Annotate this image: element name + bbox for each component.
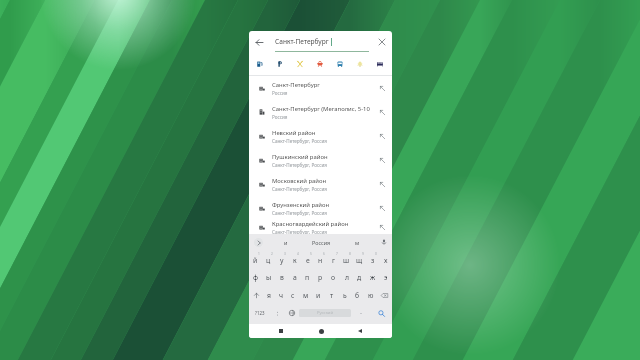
button[interactable]: ю	[364, 286, 377, 304]
button[interactable]: Пушкинский район	[249, 148, 392, 172]
button[interactable]: ф	[249, 268, 262, 286]
staticText: Московский район	[272, 177, 327, 185]
button[interactable]: Recents	[273, 324, 289, 338]
button[interactable]: Home	[313, 324, 329, 338]
staticText: 4	[297, 252, 299, 256]
button[interactable]: Красногвардейский район	[249, 220, 392, 234]
button[interactable]: 1	[249, 250, 262, 268]
button[interactable]: в	[275, 268, 288, 286]
button[interactable]: с	[287, 286, 299, 304]
button[interactable]: 3	[275, 250, 288, 268]
staticText: 0	[375, 252, 377, 256]
button[interactable]: 5	[301, 250, 314, 268]
button[interactable]: э	[379, 268, 392, 286]
button[interactable]: Clear	[370, 31, 392, 53]
button[interactable]: Backspace	[377, 286, 392, 304]
staticText: н	[318, 256, 323, 265]
button[interactable]: о	[327, 268, 340, 286]
staticText: 1	[258, 252, 260, 256]
staticText: Невский район	[272, 129, 316, 137]
staticText: з	[371, 256, 375, 265]
staticText: г	[332, 256, 335, 265]
staticText: ?123	[255, 310, 265, 316]
button[interactable]: 0	[366, 250, 379, 268]
staticText: х	[384, 256, 388, 265]
staticText: Санкт-Петербург, Россия	[272, 210, 327, 216]
button[interactable]: Voice input	[375, 234, 392, 250]
button[interactable]: 2	[262, 250, 275, 268]
button[interactable]: Change language	[284, 304, 299, 322]
button[interactable]: м	[339, 234, 375, 250]
button[interactable]: я	[263, 286, 275, 304]
button[interactable]: Русский	[299, 309, 351, 317]
button[interactable]: Parking	[270, 53, 289, 75]
button[interactable]: ы	[262, 268, 275, 286]
button[interactable]: Park	[350, 53, 369, 75]
button[interactable]: м	[299, 286, 312, 304]
button[interactable]: Санкт-Петербург	[249, 76, 392, 100]
button[interactable]: р	[314, 268, 327, 286]
staticText: л	[345, 273, 349, 282]
button[interactable]: Московский район	[249, 172, 392, 196]
staticText: ф	[253, 273, 259, 282]
staticText: ш	[343, 256, 350, 265]
staticText: в	[280, 273, 284, 282]
button[interactable]: 4	[288, 250, 301, 268]
button[interactable]: а	[288, 268, 301, 286]
button[interactable]: Фрунзенский район	[249, 196, 392, 220]
button[interactable]: More suggestions	[249, 234, 268, 250]
button[interactable]: Comma	[270, 304, 284, 322]
staticText: и	[284, 239, 288, 246]
button[interactable]: Back	[352, 324, 368, 338]
button[interactable]: 8	[340, 250, 353, 268]
button[interactable]: Hotel	[370, 53, 389, 75]
staticText: ю	[368, 291, 374, 300]
button[interactable]: ж	[366, 268, 379, 286]
staticText: 9	[362, 252, 364, 256]
button[interactable]: Food	[290, 53, 309, 75]
button[interactable]: п	[301, 268, 314, 286]
button[interactable]: Невский район	[249, 124, 392, 148]
button[interactable]: д	[353, 268, 366, 286]
staticText: 5	[310, 252, 312, 256]
staticText: щ	[356, 256, 363, 265]
staticText: ч	[279, 291, 284, 300]
button[interactable]: Fuel	[250, 53, 269, 75]
button[interactable]: Санкт-Петербург (Мегаполис, 5-10	[249, 100, 392, 124]
staticText: с	[291, 291, 295, 300]
staticText: о	[331, 273, 336, 282]
staticText: д	[357, 273, 362, 282]
staticText: е	[306, 256, 310, 265]
staticText: у	[280, 256, 284, 265]
staticText: р	[318, 273, 323, 282]
staticText: Санкт-Петербург	[275, 37, 329, 46]
button[interactable]: ь	[338, 286, 351, 304]
button[interactable]: х	[379, 250, 392, 268]
button[interactable]: и	[312, 286, 325, 304]
button[interactable]: 9	[353, 250, 366, 268]
button[interactable]: 7	[327, 250, 340, 268]
staticText: п	[305, 273, 310, 282]
staticText: Россия	[272, 114, 288, 120]
staticText: и	[316, 291, 321, 300]
button[interactable]: л	[340, 268, 353, 286]
staticText: Фрунзенский район	[272, 201, 330, 209]
staticText: 3	[284, 252, 286, 256]
staticText: ь	[343, 291, 347, 300]
button[interactable]: Search	[371, 304, 392, 322]
button[interactable]: б	[351, 286, 364, 304]
button[interactable]: 6	[314, 250, 327, 268]
button[interactable]: Россия	[303, 234, 339, 250]
button[interactable]: Shift	[249, 286, 263, 304]
button[interactable]: ?123	[249, 304, 270, 322]
button[interactable]: и	[268, 234, 303, 250]
button[interactable]: т	[325, 286, 338, 304]
staticText: 8	[349, 252, 351, 256]
button[interactable]: Shopping	[310, 53, 329, 75]
staticText: ц	[266, 256, 271, 265]
button[interactable]: ч	[275, 286, 287, 304]
button[interactable]: Back	[249, 31, 275, 53]
staticText: к	[293, 256, 297, 265]
button[interactable]: Transit	[330, 53, 349, 75]
